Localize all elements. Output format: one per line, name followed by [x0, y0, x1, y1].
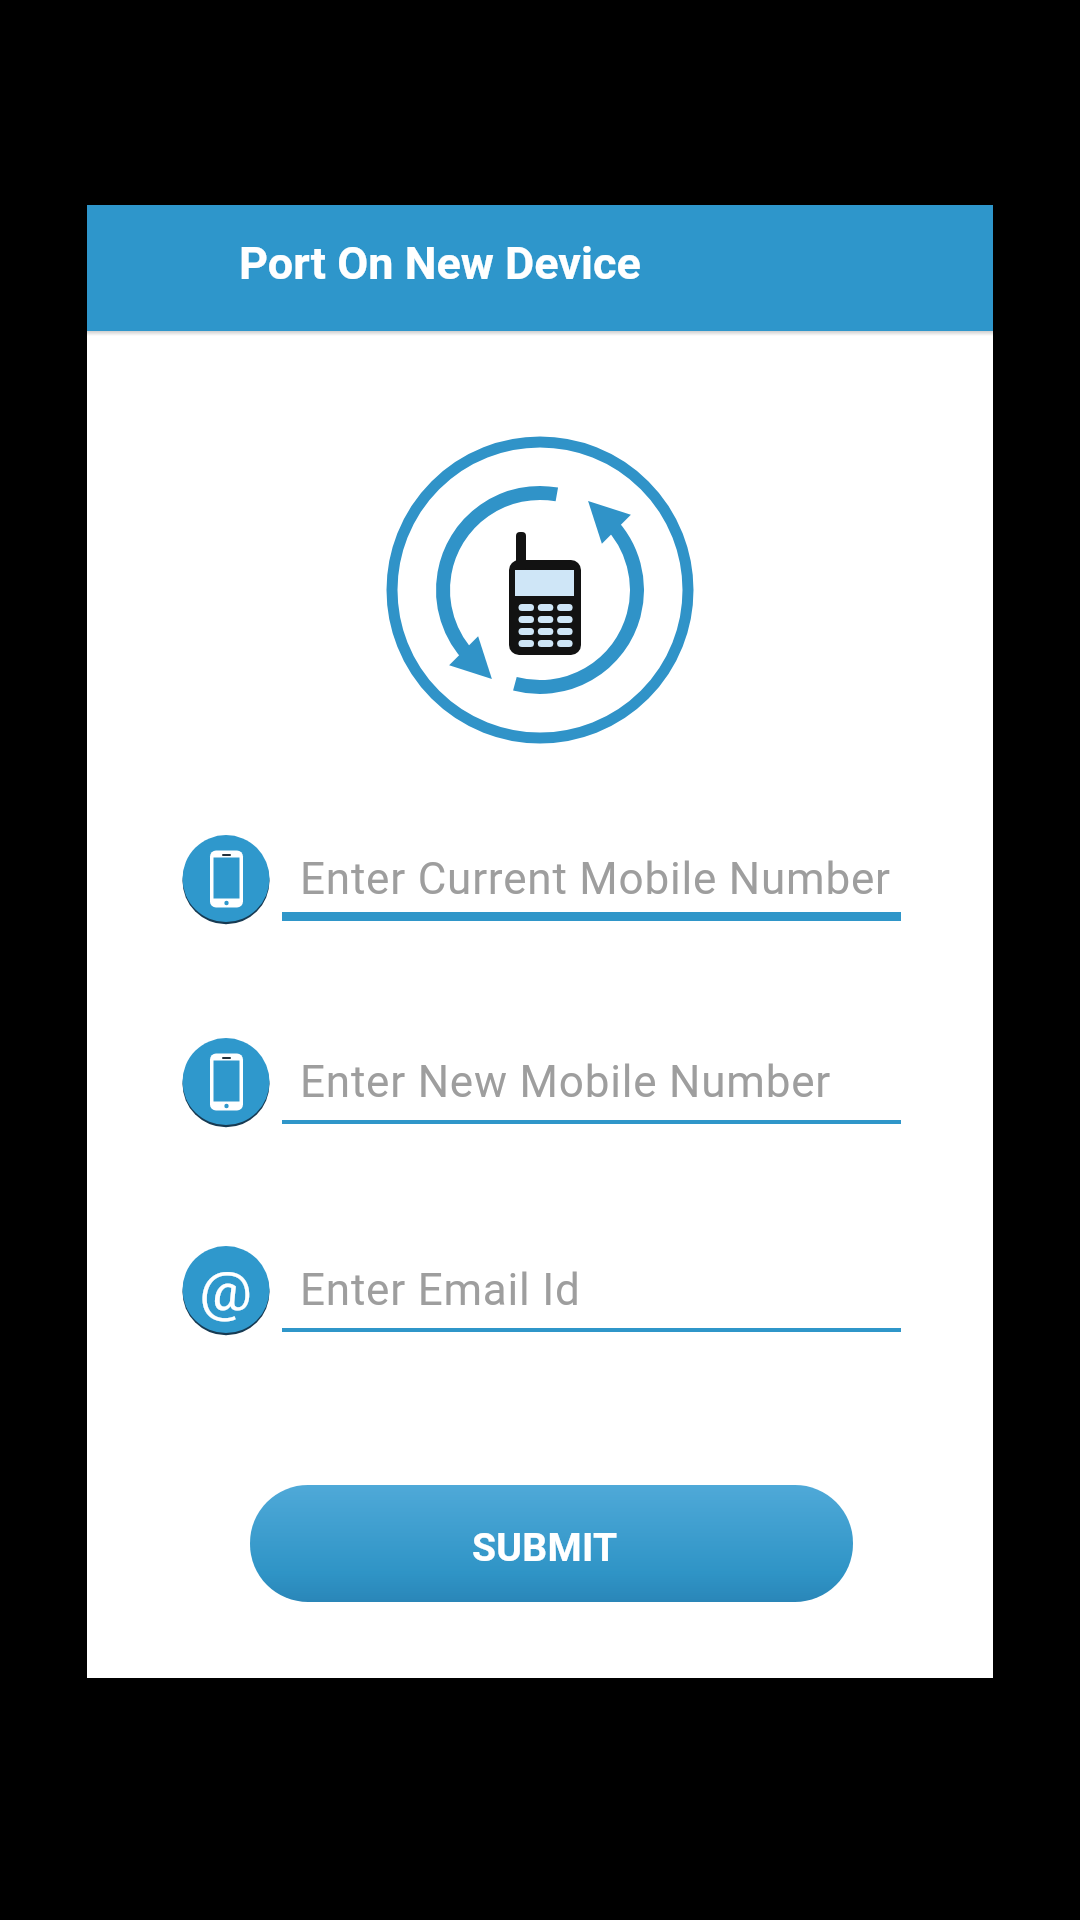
button[interactable]: @	[87, 1243, 993, 1337]
staticText: Enter Current Mobile Number	[300, 853, 891, 905]
staticText: Enter New Mobile Number	[300, 1056, 831, 1108]
staticText: Enter Email Id	[300, 1264, 581, 1316]
staticText: SUBMIT	[472, 1525, 618, 1571]
staticText: Port On New Device	[239, 237, 641, 290]
staticText: @	[199, 1261, 253, 1323]
button[interactable]: Enter Current Mobile Number	[87, 832, 993, 926]
button[interactable]: Enter New Mobile Number	[87, 1035, 993, 1129]
button[interactable]: SUBMIT	[250, 1485, 853, 1602]
